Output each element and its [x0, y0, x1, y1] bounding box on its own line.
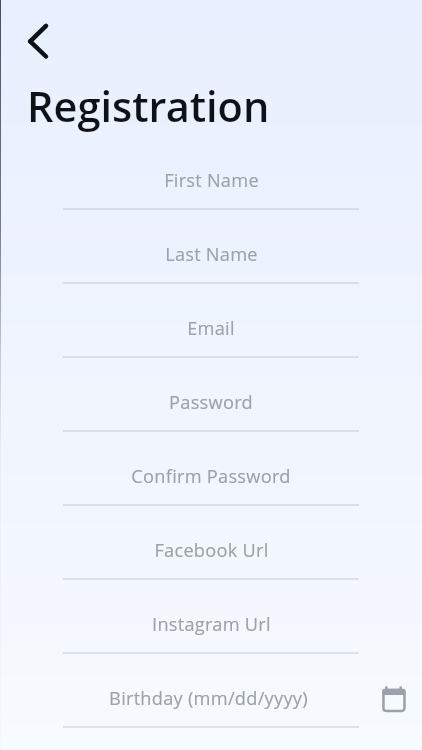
staticText: Last Name [165, 242, 258, 267]
button[interactable]: Password [0, 375, 422, 432]
button[interactable]: Pick date [372, 677, 416, 721]
button[interactable]: Facebook Url [0, 523, 422, 580]
button[interactable]: Birthday (mm/dd/yyyy) [0, 671, 422, 728]
button[interactable]: First Name [0, 153, 422, 210]
button[interactable]: Back [10, 17, 62, 65]
staticText: Confirm Password [131, 464, 291, 489]
button[interactable]: Last Name [0, 227, 422, 284]
staticText: First Name [164, 168, 259, 193]
staticText: Facebook Url [154, 538, 269, 563]
staticText: Registration [27, 78, 270, 135]
staticText: Instagram Url [152, 612, 271, 637]
staticText: Password [169, 390, 253, 415]
button[interactable]: Confirm Password [0, 449, 422, 506]
button[interactable]: Instagram Url [0, 597, 422, 654]
button[interactable]: Email [0, 301, 422, 358]
staticText: Birthday (mm/dd/yyyy) [109, 686, 308, 711]
staticText: Email [187, 316, 235, 341]
